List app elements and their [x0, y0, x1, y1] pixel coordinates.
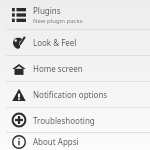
other: About Appsi [12, 135, 26, 149]
other: Troubleshooting [12, 113, 26, 127]
button[interactable]: Troubleshooting [0, 108, 150, 132]
staticText: Troubleshooting [33, 115, 95, 126]
staticText: New plugin packs [33, 17, 83, 25]
staticText: Notification options [33, 89, 108, 100]
other: Look and Feel [12, 36, 26, 50]
button[interactable]: Notification options [0, 82, 150, 107]
button[interactable]: Plugins [0, 0, 150, 29]
button[interactable]: Home screen [0, 56, 150, 81]
button[interactable]: About Appsi [0, 133, 150, 150]
other: Notification options [12, 88, 26, 102]
staticText: Home screen [33, 63, 83, 74]
other: Plugins [12, 8, 26, 22]
button[interactable]: Look and Feel [0, 30, 150, 55]
staticText: About Appsi [33, 136, 79, 147]
staticText: Look & Feel [33, 37, 77, 48]
staticText: Plugins [33, 5, 61, 16]
other: Home screen [12, 62, 26, 76]
